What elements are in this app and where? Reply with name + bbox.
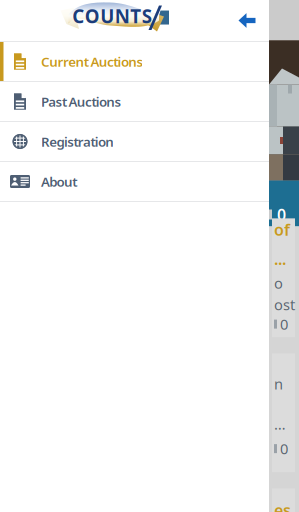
staticText: n	[274, 374, 283, 394]
staticText: es	[274, 499, 291, 512]
staticText: Past Auctions	[41, 93, 122, 110]
staticText: ost	[274, 295, 295, 314]
button[interactable]: Past Auctions	[0, 82, 269, 121]
staticText: Registration	[41, 133, 114, 150]
button[interactable]: About	[0, 162, 269, 201]
button[interactable]: Current Auctions	[0, 42, 269, 81]
staticText: me	[274, 414, 295, 434]
staticText: 0	[280, 439, 288, 458]
staticText: of	[274, 219, 290, 240]
staticText: o	[274, 273, 283, 293]
staticText: Current Auctions	[41, 53, 143, 70]
button[interactable]: Registration	[0, 122, 269, 161]
staticText: COUNTS	[72, 4, 152, 28]
button[interactable]: Back	[225, 0, 269, 41]
staticText: About	[41, 173, 77, 190]
staticText: 0	[280, 314, 288, 334]
staticText: ...	[274, 248, 286, 269]
staticText: 0	[277, 204, 286, 225]
